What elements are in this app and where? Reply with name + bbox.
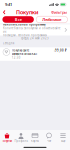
button[interactable]: Покупка сайте xyxy=(0,47,70,61)
button[interactable]: Любимые xyxy=(36,16,68,23)
button[interactable]: Чат xyxy=(42,130,56,144)
staticText: Ещё xyxy=(61,139,65,143)
staticText: Карты xyxy=(31,139,39,143)
staticText: Любимые xyxy=(42,17,61,22)
staticText: Профиль xyxy=(14,139,27,143)
staticText: магазина «УЛЫБКА» xyxy=(12,52,37,56)
staticText: Покупка сайте xyxy=(12,49,29,52)
staticText: Фильтры xyxy=(51,10,67,15)
staticText: 12:30 xyxy=(12,56,21,59)
button[interactable]: Карты xyxy=(28,130,42,144)
staticText: Покупки xyxy=(16,9,38,16)
button[interactable]: Покупки xyxy=(0,130,14,144)
staticText: Покупки xyxy=(1,139,12,143)
button[interactable]: Назад xyxy=(0,9,8,15)
staticText: Накопительная программа xyxy=(3,23,46,26)
staticText: Все xyxy=(15,17,22,22)
staticText: Чат xyxy=(47,139,51,143)
button[interactable]: Профиль xyxy=(14,130,28,144)
staticText: среда, 24 мая 2023 xyxy=(21,36,49,40)
staticText: -99,00 ₽ xyxy=(54,49,67,52)
staticText: Копите баллы за покупки и обменивайте их xyxy=(3,26,60,33)
button[interactable]: Все xyxy=(2,16,34,23)
button[interactable]: Накопительная программа xyxy=(0,24,70,35)
staticText: на скидки. Условия программы xyxy=(3,33,47,37)
button[interactable]: Фильтры xyxy=(49,9,70,16)
staticText: Сегодня xyxy=(3,41,15,45)
staticText: 9:41 xyxy=(5,2,12,7)
button[interactable]: Ещё xyxy=(56,130,70,144)
